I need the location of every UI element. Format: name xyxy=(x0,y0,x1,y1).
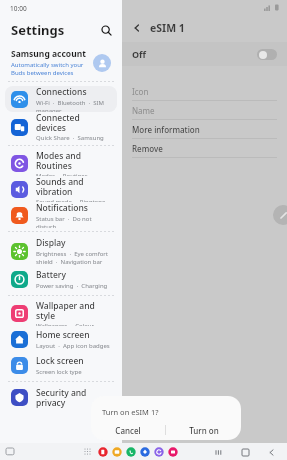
staticText: Turn on eSIM 1? xyxy=(102,407,159,417)
button[interactable]: Remove xyxy=(122,139,287,157)
button[interactable]: Back xyxy=(130,21,144,35)
button[interactable]: Cancel xyxy=(91,420,165,440)
button[interactable]: More information xyxy=(122,120,287,138)
button[interactable]: Notifications xyxy=(5,202,117,228)
staticText: More information xyxy=(132,124,200,135)
button[interactable]: Off xyxy=(122,42,287,66)
staticText: Turn on xyxy=(189,425,219,436)
staticText: Wallpaper and style xyxy=(36,300,111,321)
staticText: Power saving · Charging xyxy=(36,282,108,290)
button[interactable]: App p xyxy=(98,447,108,457)
button[interactable]: Turn on xyxy=(166,420,241,440)
button[interactable]: Name xyxy=(122,101,287,119)
staticText: Off xyxy=(132,48,147,60)
staticText: Status bar · Do not disturb xyxy=(36,215,111,228)
staticText: Brightness · Eye comfort shield · Naviga… xyxy=(36,250,111,266)
staticText: Name xyxy=(132,105,155,116)
button[interactable]: Apps xyxy=(83,447,93,457)
staticText: Wi-Fi · Bluetooth · SIM manager xyxy=(36,99,111,112)
button[interactable]: App o xyxy=(112,447,122,457)
button[interactable]: Modes and Routines xyxy=(5,150,117,176)
button[interactable]: App c xyxy=(126,447,136,457)
button[interactable]: Home xyxy=(237,444,253,460)
button[interactable]: App s xyxy=(154,447,164,457)
staticText: Modes · Routines xyxy=(36,172,88,176)
staticText: 10:00 xyxy=(10,4,27,13)
staticText: Notifications xyxy=(36,202,88,214)
button[interactable]: Display xyxy=(5,236,117,266)
staticText: Icon xyxy=(132,86,149,97)
staticText: Display xyxy=(36,237,66,249)
staticText: Samsung account xyxy=(11,48,86,60)
staticText: Sounds and vibration xyxy=(36,176,111,197)
staticText: Connected devices xyxy=(36,112,111,133)
button[interactable]: Recent app xyxy=(5,447,15,457)
staticText: Security and privacy xyxy=(36,387,111,408)
button[interactable]: Back xyxy=(263,444,279,460)
staticText: eSIM 1 xyxy=(150,21,185,35)
button[interactable]: Wallpaper and style xyxy=(5,300,117,326)
staticText: Screen lock type xyxy=(36,368,82,376)
button[interactable]: Recents xyxy=(211,444,227,460)
button[interactable]: Connections xyxy=(5,86,117,112)
button[interactable]: Security and privacy xyxy=(5,386,117,408)
button[interactable]: Edit xyxy=(273,205,287,225)
button[interactable]: App b xyxy=(140,447,150,457)
staticText: Quick Share · Samsung DeX · Android Auto xyxy=(36,134,111,142)
staticText: Modes and Routines xyxy=(36,150,111,171)
button[interactable]: Sounds and vibration xyxy=(5,176,117,202)
staticText: Lock screen xyxy=(36,355,84,367)
button[interactable]: Search xyxy=(98,22,114,38)
button[interactable]: Lock screen xyxy=(5,352,117,378)
button[interactable]: Icon xyxy=(122,82,287,100)
staticText: Sound mode · Ringtone xyxy=(36,198,106,202)
staticText: Connections xyxy=(36,86,87,98)
button[interactable]: Samsung account xyxy=(0,44,122,81)
staticText: Layout · App icon badges xyxy=(36,342,110,350)
staticText: Remove xyxy=(132,143,163,154)
staticText: Wallpapers · Colour palette xyxy=(36,322,111,326)
staticText: Automatically switch your Buds between d… xyxy=(11,61,89,77)
button[interactable]: Battery xyxy=(5,266,117,292)
staticText: Home screen xyxy=(36,329,90,341)
staticText: Battery xyxy=(36,269,66,281)
button[interactable]: Home screen xyxy=(5,326,117,352)
staticText: Settings xyxy=(11,21,65,39)
button[interactable]: App g xyxy=(168,447,178,457)
button[interactable]: Connected devices xyxy=(5,112,117,142)
staticText: Cancel xyxy=(115,425,141,436)
